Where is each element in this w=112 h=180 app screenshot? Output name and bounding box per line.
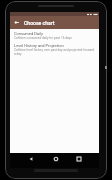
- button[interactable]: Recent apps: [73, 153, 85, 165]
- staticText: Consumed Daily: [14, 31, 43, 36]
- button[interactable]: Level History and Projection: [10, 43, 99, 56]
- button[interactable]: Consumed Daily: [10, 31, 99, 40]
- staticText: Choose chart: [24, 20, 55, 26]
- staticText: Caffeine level history over past day and…: [14, 48, 95, 56]
- button[interactable]: Navigate up: [10, 16, 23, 29]
- button[interactable]: Home: [50, 153, 62, 165]
- staticText: Caffeine consumed daily for past 16 days: [14, 36, 72, 40]
- staticText: Level History and Projection: [14, 43, 64, 48]
- button[interactable]: Back: [25, 153, 37, 165]
